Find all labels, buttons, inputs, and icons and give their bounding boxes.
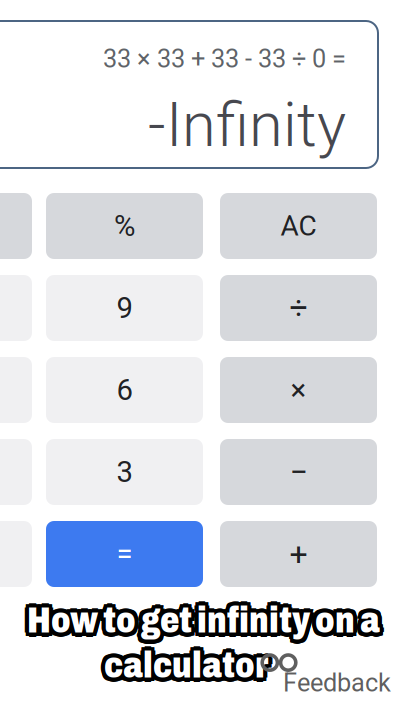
staticText: 33 × 33 + 33 - 33 ÷ 0 = [103,44,346,74]
staticText: How to get infinity on a [30,601,383,640]
staticText: How to get infinity on a [31,601,384,640]
staticText: calculator [101,649,265,688]
staticText: calculator [101,643,265,682]
staticText: How to get infinity on a [24,601,377,640]
staticText: How to get infinity on a [24,604,377,643]
staticText: How to get infinity on a [27,605,380,645]
staticText: AC [280,210,316,242]
staticText: calculator [107,643,271,682]
staticText: calculator [107,646,271,685]
staticText: How to get infinity on a [30,604,383,643]
staticText: calculator [104,642,268,681]
staticText: calculator [101,643,265,682]
staticText: How to get infinity on a [30,604,383,643]
staticText: How to get infinity on a [27,604,380,643]
button[interactable]: − [220,439,377,505]
staticText: × [290,373,306,407]
staticText: calculator [101,649,265,688]
staticText: calculator [104,646,268,685]
staticText: How to get infinity on a [24,604,377,643]
staticText: How to get infinity on a [24,598,377,637]
staticText: calculator [104,649,268,688]
button[interactable]: 3 [46,439,203,505]
staticText: How to get infinity on a [23,601,376,640]
button[interactable]: % [46,193,203,259]
staticText: How to get infinity on a [27,597,380,636]
staticText: = [116,537,132,571]
button[interactable]: 9 [46,275,203,341]
staticText: calculator [107,649,271,688]
staticText: How to get infinity on a [27,601,380,640]
staticText: How to get infinity on a [27,598,380,637]
staticText: calculator [108,646,272,685]
staticText: How to get infinity on a [24,598,377,637]
staticText: How to get infinity on a [30,598,383,637]
staticText: How to get infinity on a [30,598,383,637]
staticText: 3 [116,455,132,489]
staticText: -Infinity [148,89,346,161]
staticText: calculator [100,646,264,685]
button[interactable]: AC [220,193,377,259]
staticText: % [114,209,135,243]
button[interactable]: ÷ [220,275,377,341]
button[interactable] [0,193,32,259]
staticText: 6 [116,373,132,407]
staticText: 9 [116,291,132,325]
staticText: calculator [104,643,268,682]
staticText: Feedback [283,668,391,698]
button[interactable]: 6 [46,357,203,423]
button[interactable]: Feedback [283,668,391,698]
button[interactable]: + [220,521,377,587]
staticText: + [289,535,307,573]
staticText: calculator [104,650,268,690]
staticText: calculator [107,649,271,688]
staticText: calculator [101,646,265,685]
button[interactable]: × [220,357,377,423]
staticText: − [289,453,307,491]
staticText: ÷ [289,289,307,327]
button[interactable]: = [46,521,203,587]
staticText: calculator [107,643,271,682]
